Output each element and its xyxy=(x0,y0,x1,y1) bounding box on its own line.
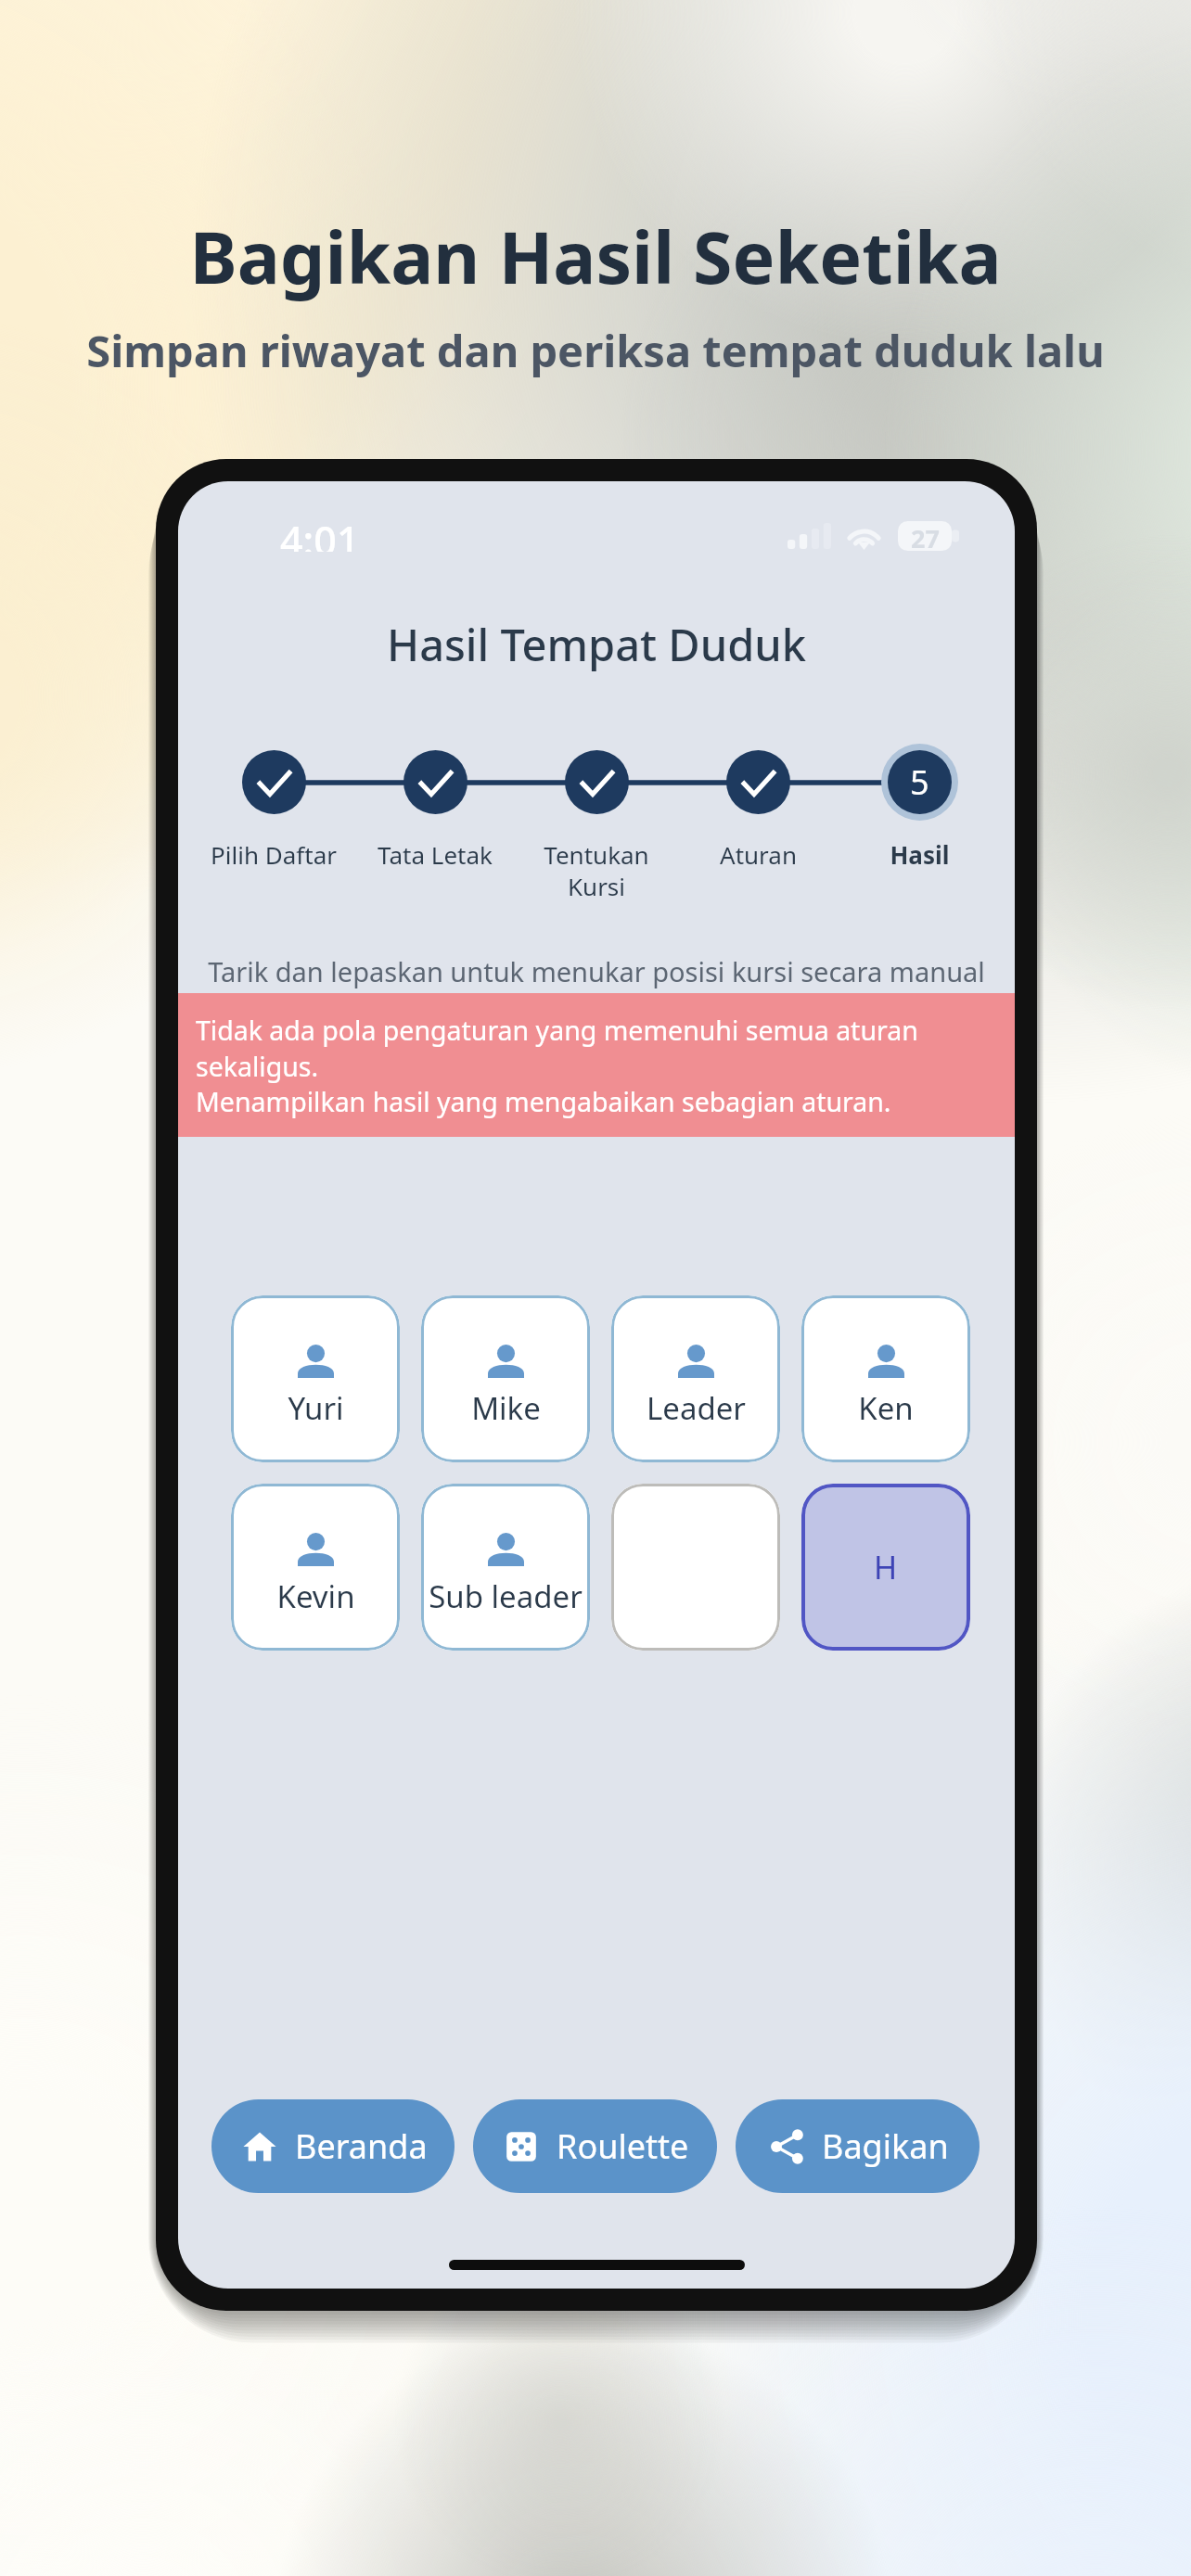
button[interactable]: Leader xyxy=(611,1295,780,1462)
staticText: Aturan xyxy=(720,838,797,871)
staticText: Ken xyxy=(858,1387,914,1429)
staticText: Tentukan Kursi xyxy=(544,838,649,902)
staticText: Tarik dan lepaskan untuk menukar posisi … xyxy=(178,953,1015,989)
staticText: Mike xyxy=(471,1387,541,1429)
staticText: Tata Letak xyxy=(378,838,493,871)
staticText: Yuri xyxy=(288,1387,344,1429)
staticText: Sub leader xyxy=(429,1575,583,1617)
staticText: Hasil Tempat Duduk xyxy=(178,615,1015,674)
staticText: Bagikan xyxy=(822,2123,949,2169)
button[interactable]: Ken xyxy=(801,1295,970,1462)
staticText: Tidak ada pola pengaturan yang memenuhi … xyxy=(196,1013,918,1119)
button[interactable]: Bagikan xyxy=(736,2099,980,2193)
button[interactable]: Tentukan Kursi xyxy=(565,750,629,814)
staticText: 27 xyxy=(911,521,940,551)
staticText: Leader xyxy=(647,1387,746,1429)
staticText: Beranda xyxy=(295,2123,428,2169)
staticText: Simpan riwayat dan periksa tempat duduk … xyxy=(86,321,1105,380)
staticText: Roulette xyxy=(557,2123,689,2169)
staticText: Hasil xyxy=(890,838,950,871)
button[interactable]: Tata Letak xyxy=(403,750,467,814)
button[interactable]: Beranda xyxy=(211,2099,455,2193)
button[interactable]: Mike xyxy=(421,1295,590,1462)
button[interactable]: Aturan xyxy=(726,750,790,814)
staticText: 5 xyxy=(910,759,929,805)
button[interactable]: H xyxy=(801,1484,970,1651)
staticText: Kevin xyxy=(276,1575,355,1617)
button[interactable]: Kevin xyxy=(231,1484,400,1651)
button[interactable]: Roulette xyxy=(473,2099,717,2193)
staticText: 4:01 xyxy=(280,513,360,552)
button[interactable]: 5 xyxy=(881,744,958,821)
button[interactable]: Empty seat xyxy=(611,1484,780,1651)
button[interactable]: Yuri xyxy=(231,1295,400,1462)
staticText: H xyxy=(874,1546,898,1588)
button[interactable]: Pilih Daftar xyxy=(242,750,306,814)
staticText: Bagikan Hasil Seketika xyxy=(189,208,1002,305)
staticText: Pilih Daftar xyxy=(211,838,337,871)
button[interactable]: Sub leader xyxy=(421,1484,590,1651)
